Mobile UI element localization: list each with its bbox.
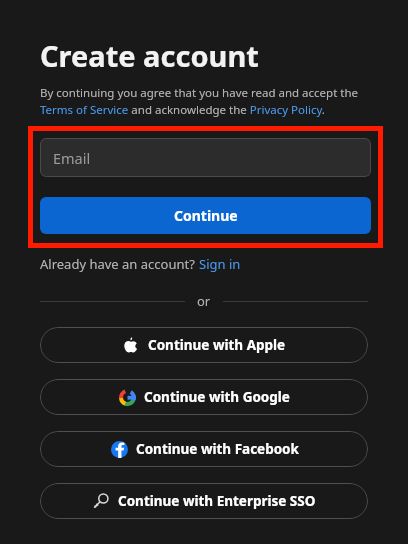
staticText: By continuing you agree that you have re… [40, 85, 359, 117]
button[interactable]: Continue with Apple [40, 327, 368, 363]
staticText: Create account [40, 36, 259, 75]
staticText: or [197, 292, 211, 310]
button[interactable]: Continue with Facebook [40, 431, 368, 467]
staticText: Continue with Enterprise SSO [118, 492, 316, 510]
button[interactable]: Continue [40, 197, 371, 234]
staticText: Continue [174, 206, 238, 225]
button[interactable]: Sign in [199, 255, 241, 273]
staticText: Continue with Apple [148, 336, 286, 354]
staticText: Already have an account? [40, 255, 199, 273]
staticText: Email [53, 148, 91, 168]
staticText: Sign in [199, 255, 241, 273]
staticText: Continue with Google [144, 388, 290, 406]
button[interactable]: Continue with Enterprise SSO [40, 483, 368, 519]
button[interactable]: Email [40, 138, 371, 177]
staticText: Continue with Facebook [136, 440, 299, 458]
button[interactable]: Continue with Google [40, 379, 368, 415]
